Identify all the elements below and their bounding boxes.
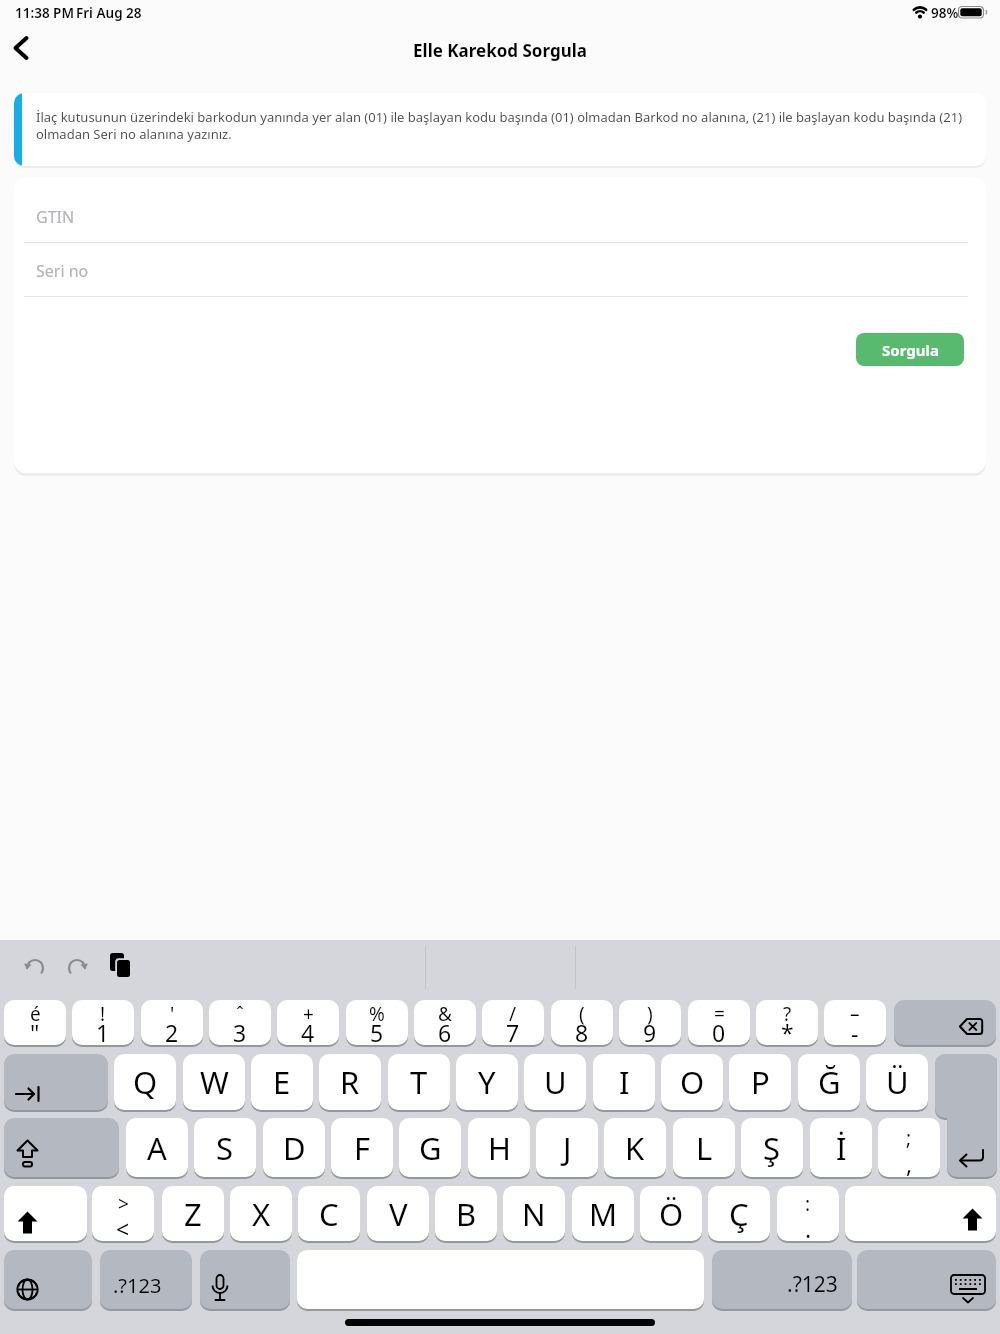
- button[interactable]: W: [183, 1054, 245, 1110]
- button[interactable]: Q: [114, 1054, 176, 1110]
- button[interactable]: [4, 1054, 108, 1110]
- button[interactable]: [25, 956, 45, 978]
- button[interactable]: D: [263, 1118, 325, 1177]
- button[interactable]: L: [673, 1118, 735, 1177]
- button[interactable]: +: [277, 1000, 339, 1045]
- staticText: P: [751, 1061, 770, 1103]
- button[interactable]: –: [824, 1000, 886, 1045]
- button[interactable]: [4, 1118, 119, 1177]
- staticText: ˆ: [236, 1001, 244, 1027]
- button[interactable]: N: [503, 1186, 565, 1241]
- staticText: Ş: [763, 1127, 781, 1169]
- button[interactable]: E: [251, 1054, 313, 1110]
- button[interactable]: /: [482, 1000, 544, 1045]
- button[interactable]: O: [661, 1054, 723, 1110]
- staticText: Ğ: [818, 1061, 841, 1103]
- button[interactable]: Sorgula: [856, 333, 964, 366]
- staticText: ': [170, 1001, 175, 1027]
- button[interactable]: [4, 1186, 87, 1241]
- staticText: 1: [96, 1017, 110, 1045]
- button[interactable]: S: [194, 1118, 256, 1177]
- button[interactable]: F: [331, 1118, 393, 1177]
- staticText: J: [563, 1127, 572, 1169]
- button[interactable]: M: [572, 1186, 634, 1241]
- button[interactable]: .?123: [712, 1250, 852, 1309]
- staticText: 8: [575, 1017, 589, 1045]
- button[interactable]: Y: [456, 1054, 518, 1110]
- staticText: B: [456, 1193, 477, 1235]
- staticText: I: [619, 1061, 630, 1103]
- button[interactable]: H: [468, 1118, 530, 1177]
- button[interactable]: ': [141, 1000, 203, 1045]
- staticText: ): [647, 1001, 653, 1027]
- staticText: L: [696, 1127, 713, 1169]
- button[interactable]: [4, 32, 38, 64]
- staticText: 9: [643, 1017, 657, 1045]
- button[interactable]: Ü: [866, 1054, 928, 1110]
- staticText: Y: [478, 1061, 496, 1103]
- staticText: O: [680, 1061, 705, 1103]
- button[interactable]: Ş: [741, 1118, 803, 1177]
- button[interactable]: ˆ: [209, 1000, 271, 1045]
- button[interactable]: Ö: [640, 1186, 702, 1241]
- staticText: C: [319, 1193, 339, 1235]
- button[interactable]: A: [126, 1118, 188, 1177]
- button[interactable]: Ğ: [798, 1054, 860, 1110]
- staticText: %: [369, 1001, 385, 1027]
- button[interactable]: I: [593, 1054, 655, 1110]
- button[interactable]: T: [388, 1054, 450, 1110]
- button[interactable]: G: [399, 1118, 461, 1177]
- staticText: Z: [184, 1193, 202, 1235]
- button[interactable]: J: [536, 1118, 598, 1177]
- button[interactable]: =: [688, 1000, 750, 1045]
- button[interactable]: B: [435, 1186, 497, 1241]
- button[interactable]: ;: [878, 1118, 940, 1177]
- button[interactable]: X: [230, 1186, 292, 1241]
- button[interactable]: [894, 1000, 996, 1045]
- staticText: *: [781, 1017, 794, 1045]
- button[interactable]: &: [414, 1000, 476, 1045]
- button[interactable]: !: [72, 1000, 134, 1045]
- staticText: 6: [438, 1017, 452, 1045]
- button[interactable]: [109, 952, 135, 980]
- button[interactable]: [857, 1250, 996, 1309]
- button[interactable]: V: [367, 1186, 429, 1241]
- staticText: F: [354, 1127, 371, 1169]
- staticText: –: [850, 1001, 860, 1027]
- button[interactable]: Ç: [708, 1186, 770, 1241]
- staticText: Ö: [659, 1193, 684, 1235]
- button[interactable]: C: [298, 1186, 360, 1241]
- staticText: 7: [506, 1017, 520, 1045]
- button[interactable]: [200, 1250, 290, 1309]
- button[interactable]: [4, 1250, 92, 1309]
- button[interactable]: [935, 1054, 997, 1118]
- button[interactable]: .?123: [100, 1250, 192, 1309]
- button[interactable]: R: [319, 1054, 381, 1110]
- button[interactable]: >: [92, 1186, 154, 1241]
- button[interactable]: ?: [756, 1000, 818, 1045]
- button[interactable]: é: [4, 1000, 66, 1045]
- staticText: (: [579, 1001, 585, 1027]
- staticText: :: [805, 1191, 811, 1217]
- button[interactable]: İ: [810, 1118, 872, 1177]
- button[interactable]: [67, 956, 87, 978]
- button[interactable]: [947, 1060, 997, 1177]
- staticText: E: [273, 1061, 291, 1103]
- button[interactable]: (: [551, 1000, 613, 1045]
- button[interactable]: Z: [162, 1186, 224, 1241]
- staticText: X: [252, 1193, 271, 1235]
- button[interactable]: ): [619, 1000, 681, 1045]
- button[interactable]: [845, 1186, 996, 1241]
- button[interactable]: U: [524, 1054, 586, 1110]
- button[interactable]: :: [777, 1186, 839, 1241]
- staticText: İlaç kutusunun üzerindeki barkodun yanın…: [36, 108, 982, 143]
- button[interactable]: K: [604, 1118, 666, 1177]
- button[interactable]: P: [729, 1054, 791, 1110]
- staticText: >: [118, 1191, 129, 1217]
- staticText: T: [410, 1061, 428, 1103]
- button[interactable]: %: [346, 1000, 408, 1045]
- staticText: 11:38 PM: [15, 4, 74, 22]
- staticText: H: [488, 1127, 511, 1169]
- staticText: 2: [165, 1017, 179, 1045]
- button[interactable]: [297, 1250, 704, 1309]
